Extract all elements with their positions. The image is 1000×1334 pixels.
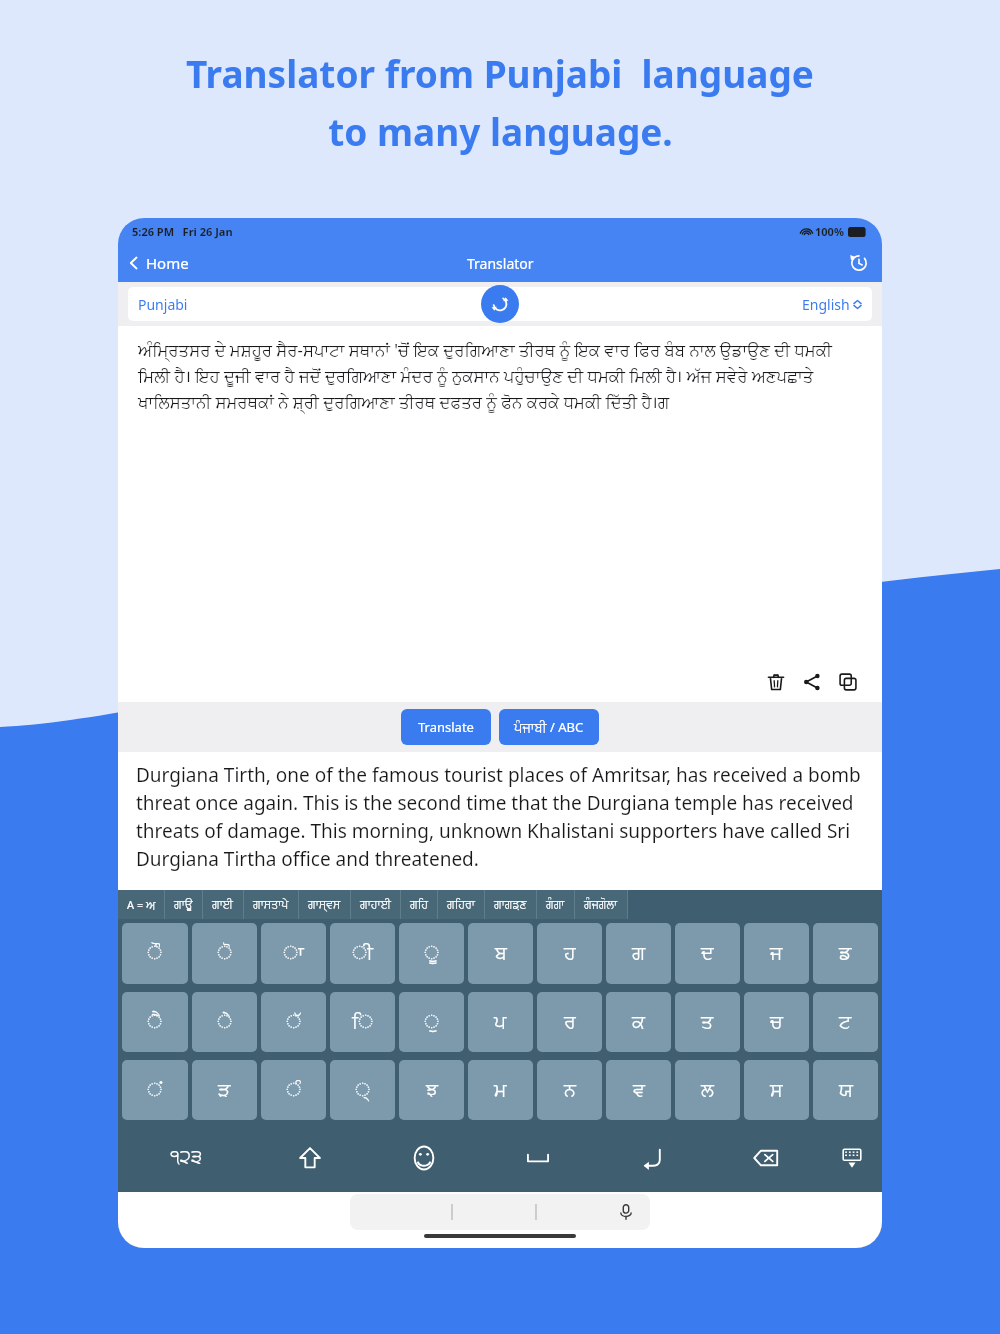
staticText: ਵ [633, 1081, 645, 1100]
button[interactable]: ਜ [744, 923, 809, 984]
staticText: 5:26 PM Fri 26 Jan [132, 224, 233, 239]
staticText: ਗਾਉੂ [174, 899, 193, 910]
button[interactable]: ਯ [813, 1060, 878, 1120]
staticText: ਗਹਿਰਾ [447, 899, 475, 910]
button[interactable]: ਗੰਗਾ [546, 890, 565, 919]
staticText: ੀ [352, 944, 373, 963]
button[interactable]: ਗਾਉੂ [174, 890, 193, 919]
button[interactable]: Emoji [369, 1128, 479, 1188]
button[interactable]: ੀ [330, 923, 395, 984]
button[interactable]: ਮ [468, 1060, 533, 1120]
button[interactable]: ਦ [675, 923, 740, 984]
button[interactable]: ੱ [261, 992, 326, 1052]
button[interactable]: Enter [597, 1128, 707, 1188]
staticText: ੰ [286, 1081, 302, 1100]
button[interactable]: ਗਾਹਾਈ [360, 890, 391, 919]
staticText: ੜ [218, 1081, 231, 1100]
staticText: ਕ [632, 1013, 645, 1032]
staticText: English [802, 295, 850, 314]
staticText: ਜ [770, 944, 783, 963]
button[interactable]: Swap languages [481, 285, 519, 323]
button[interactable]: ਹ [537, 923, 602, 984]
button[interactable]: Delete [764, 670, 788, 694]
button[interactable]: ਬ [468, 923, 533, 984]
button[interactable]: ੰ [261, 1060, 326, 1120]
button[interactable]: ਨ [537, 1060, 602, 1120]
button[interactable]: ਗਾਗਡ਼ਣ [494, 890, 527, 919]
button[interactable]: Backspace [711, 1128, 821, 1188]
staticText: ਪੰਜਾਬੀ / ABC [514, 718, 584, 736]
button[interactable]: ਪੰਜਾਬੀ / ABC [499, 709, 599, 745]
button[interactable]: ੌ [122, 923, 188, 984]
button[interactable]: ਗਹਿ [410, 890, 428, 919]
button[interactable]: Copy [836, 670, 860, 694]
staticText: ਗਾਈ [212, 899, 234, 910]
staticText: Translator from Punjabi language [186, 48, 814, 98]
button[interactable]: ਡ [813, 923, 878, 984]
staticText: ਗਹਿ [410, 899, 428, 910]
staticText: ਗਾਸਤਾਪੇ [253, 899, 289, 910]
button[interactable]: Space [483, 1128, 593, 1188]
staticText: ਮ [494, 1081, 507, 1100]
button[interactable]: ਗੰਜਗੋਲਾ [584, 890, 618, 919]
button[interactable]: ੇ [192, 992, 257, 1052]
staticText: ਗਾਸ੍ਵਸ [308, 899, 341, 910]
staticText: ਟ [839, 1013, 852, 1032]
button[interactable]: ਗਾਸ੍ਵਸ [308, 890, 341, 919]
staticText: ੱ [286, 1013, 302, 1032]
button[interactable]: ੍ [330, 1060, 395, 1120]
button[interactable]: ਗਾਸਤਾਪੇ [253, 890, 289, 919]
staticText: ਅੰਮ੍ਰਿਤਸਰ ਦੇ ਮਸ਼ਹੂਰ ਸੈਰ-ਸਪਾਟਾ ਸਥਾਨਾਂ 'ਚੋ… [138, 338, 864, 413]
staticText: ੈ [147, 1013, 163, 1032]
button[interactable]: Shift [255, 1128, 365, 1188]
staticText: ਸ [770, 1081, 783, 1100]
staticText: ਗਾਗਡ਼ਣ [494, 899, 527, 910]
staticText: ੂ [424, 944, 440, 963]
button[interactable]: Hide keyboard [825, 1128, 878, 1188]
button[interactable]: ਗਾਈ [212, 890, 234, 919]
button[interactable]: ਪ [468, 992, 533, 1052]
staticText: ਗ [632, 944, 646, 963]
button[interactable]: ਟ [813, 992, 878, 1052]
button[interactable]: ੂ [399, 923, 464, 984]
button[interactable]: ਤ [675, 992, 740, 1052]
button[interactable]: Punjabi [138, 295, 188, 314]
button[interactable]: ਗਹਿਰਾ [447, 890, 475, 919]
button[interactable]: ਾ [261, 923, 326, 984]
staticText: ਰ [564, 1013, 576, 1032]
button[interactable]: ਚ [744, 992, 809, 1052]
button[interactable]: ਗ [606, 923, 671, 984]
staticText: ਾ [283, 944, 304, 963]
button[interactable]: ੜ [192, 1060, 257, 1120]
staticText: ੇ [217, 1013, 233, 1032]
button[interactable]: ਲ [675, 1060, 740, 1120]
staticText: ੁ [424, 1013, 440, 1032]
button[interactable]: Translate [401, 709, 491, 745]
button[interactable]: ੁ [399, 992, 464, 1052]
staticText: ਲ [701, 1081, 714, 1100]
staticText: ਦ [701, 944, 714, 963]
button[interactable]: ੈ [122, 992, 188, 1052]
button[interactable]: ਂ [122, 1060, 188, 1120]
staticText: ਝ [426, 1081, 438, 1100]
staticText: ਗੰਗਾ [546, 899, 565, 910]
staticText: ਡ [839, 944, 852, 963]
button[interactable]: ੋ [192, 923, 257, 984]
button[interactable]: History [846, 250, 872, 276]
button[interactable]: ਝ [399, 1060, 464, 1120]
button[interactable]: Share [800, 670, 824, 694]
staticText: ਪ [494, 1013, 507, 1032]
staticText: ਤ [701, 1013, 714, 1032]
button[interactable]: English [802, 295, 862, 314]
button[interactable]: Numbers [122, 1128, 251, 1188]
staticText: ਿ [352, 1013, 374, 1032]
button[interactable]: A = ਅ [118, 890, 164, 919]
button[interactable]: ਕ [606, 992, 671, 1052]
staticText: ਂ [147, 1081, 163, 1100]
button[interactable]: ਸ [744, 1060, 809, 1120]
staticText: ਨ [564, 1081, 576, 1100]
button[interactable]: ਿ [330, 992, 395, 1052]
button[interactable]: ਵ [606, 1060, 671, 1120]
button[interactable]: ਰ [537, 992, 602, 1052]
button[interactable]: Home [126, 253, 189, 273]
